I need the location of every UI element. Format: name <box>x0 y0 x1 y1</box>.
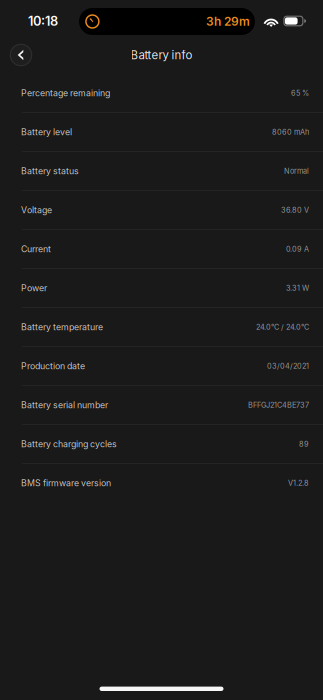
staticText: 03/04/2021 <box>267 362 309 370</box>
staticText: 8060 mAh <box>272 128 309 136</box>
staticText: Battery charging cycles <box>21 439 117 449</box>
staticText: 3h 29m <box>206 14 250 29</box>
staticText: Percentage remaining <box>21 88 110 98</box>
staticText: Production date <box>21 361 85 371</box>
staticText: 10:18 <box>28 13 58 29</box>
staticText: Power <box>21 283 47 293</box>
staticText: 89 <box>299 440 309 448</box>
staticText: Normal <box>284 167 309 175</box>
staticText: 3.31 W <box>286 284 309 292</box>
staticText: BFFGJ21C4BE737 <box>248 401 309 409</box>
staticText: Battery level <box>21 127 72 137</box>
staticText: Battery info <box>130 48 192 62</box>
staticText: V1.2.8 <box>288 479 309 487</box>
button[interactable]: Back <box>6 40 36 70</box>
staticText: 24.0°C / 24.0°C <box>256 323 309 331</box>
staticText: Battery temperature <box>21 322 103 332</box>
staticText: Voltage <box>21 205 52 215</box>
staticText: Battery serial number <box>21 400 108 410</box>
staticText: 36.80 V <box>281 206 309 214</box>
staticText: BMS firmware version <box>21 478 111 488</box>
staticText: 65 % <box>291 89 309 97</box>
staticText: Battery status <box>21 166 79 176</box>
staticText: Current <box>21 244 51 254</box>
staticText: 0.09 A <box>286 245 309 253</box>
